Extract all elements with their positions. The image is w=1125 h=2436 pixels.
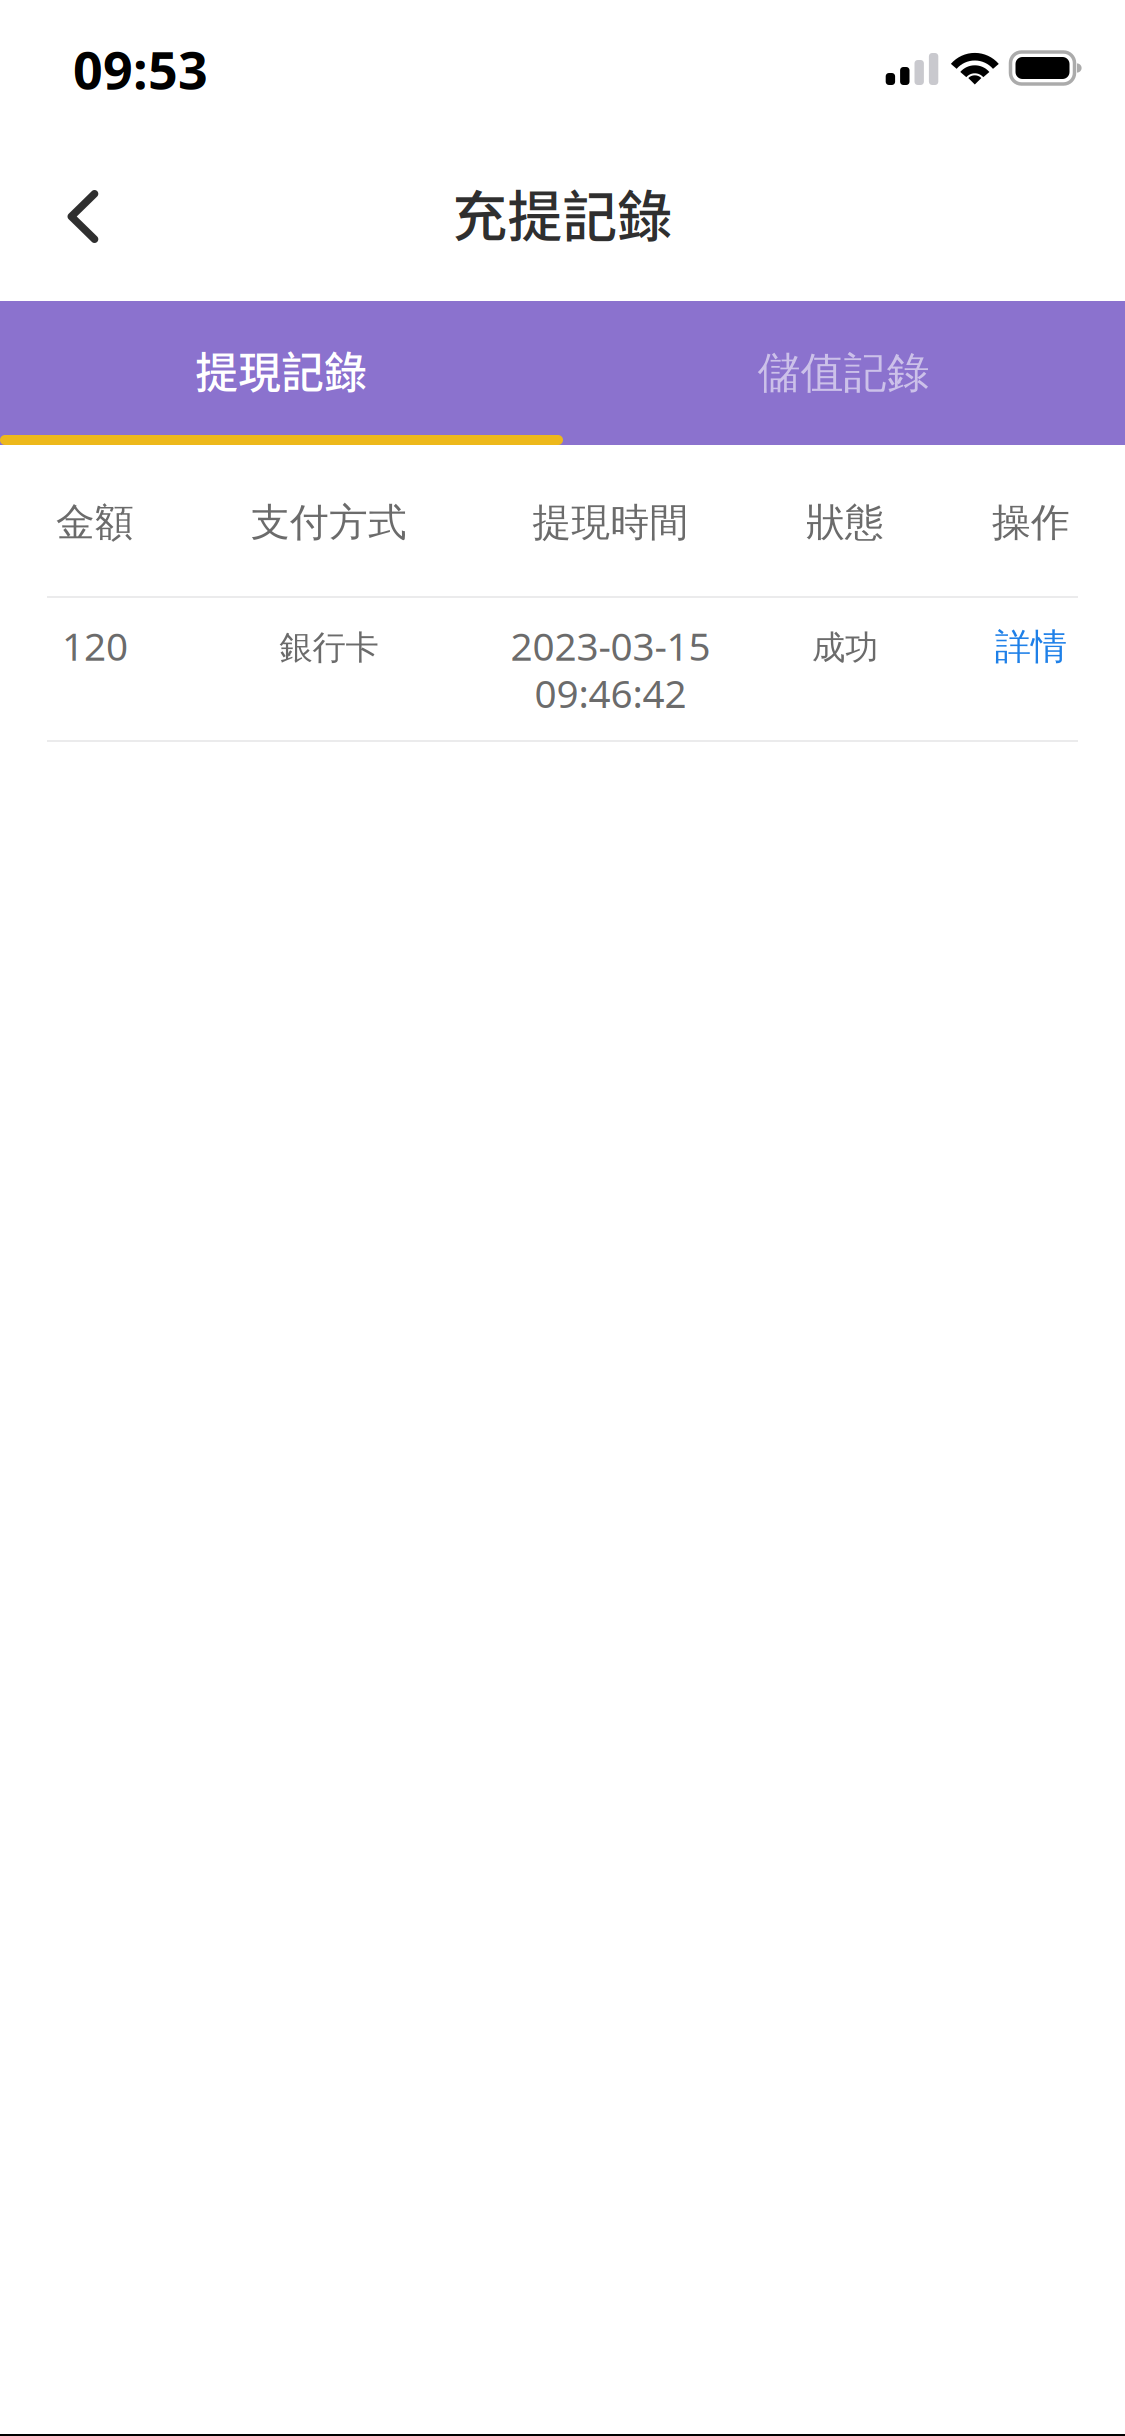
button[interactable]: Back <box>27 160 139 272</box>
staticText: 提現時間 <box>532 499 688 546</box>
staticText: 充提記錄 <box>452 173 672 252</box>
staticText: 120 <box>62 620 128 671</box>
staticText: 操作 <box>992 499 1070 546</box>
button[interactable]: 提現記錄 <box>0 301 562 445</box>
staticText: 詳情 <box>995 625 1067 669</box>
button[interactable]: 儲值記錄 <box>562 301 1125 445</box>
staticText: 提現記錄 <box>195 339 367 401</box>
staticText: 銀行卡 <box>279 627 378 668</box>
staticText: 09:53 <box>73 34 208 104</box>
staticText: 2023-03-15 <box>510 620 710 671</box>
staticText: 支付方式 <box>251 499 407 546</box>
staticText: 金額 <box>56 499 134 546</box>
staticText: 狀態 <box>806 499 884 546</box>
button[interactable]: 詳情 <box>937 627 1125 671</box>
staticText: 儲值記錄 <box>758 347 930 399</box>
staticText: 09:46:42 <box>534 667 686 719</box>
staticText: 成功 <box>812 627 878 668</box>
